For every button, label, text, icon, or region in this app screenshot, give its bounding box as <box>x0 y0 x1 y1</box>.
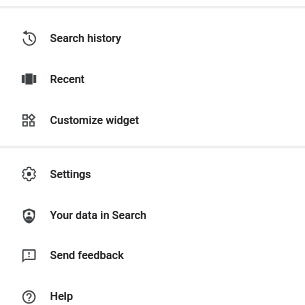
staticText: Send feedback <box>50 249 124 262</box>
button[interactable]: Settings <box>0 154 305 195</box>
button[interactable]: Recent <box>0 59 305 100</box>
staticText: Recent <box>50 73 85 86</box>
staticText: Customize widget <box>50 114 139 127</box>
staticText: Your data in Search <box>50 209 147 222</box>
button[interactable]: Customize widget <box>0 100 305 141</box>
staticText: Settings <box>50 168 92 181</box>
staticText: Your data in Search <box>50 209 147 222</box>
staticText: Help <box>50 290 73 303</box>
staticText: Search history <box>50 32 122 45</box>
button[interactable]: Search history <box>0 18 305 59</box>
button[interactable]: Send feedback <box>0 235 305 276</box>
button[interactable]: Help <box>0 276 305 305</box>
staticText: Help <box>50 290 73 303</box>
staticText: Customize widget <box>50 114 139 127</box>
staticText: Send feedback <box>50 249 124 262</box>
button[interactable]: Your data in Search <box>0 195 305 236</box>
staticText: Settings <box>50 168 92 181</box>
staticText: Recent <box>50 73 85 86</box>
staticText: Search history <box>50 32 122 45</box>
